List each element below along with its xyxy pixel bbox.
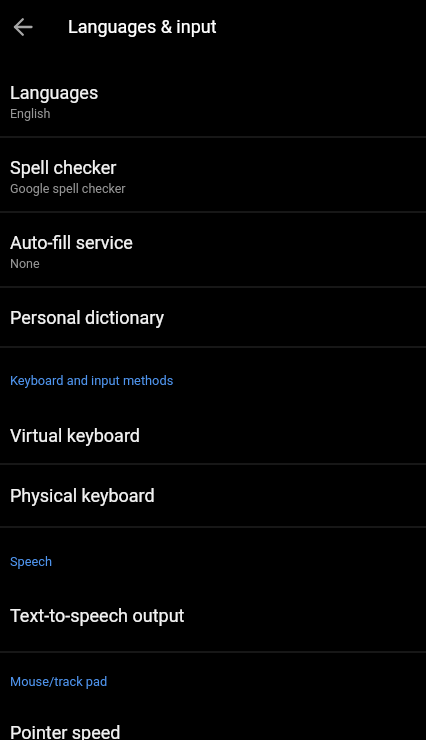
staticText: Google spell checker bbox=[10, 181, 126, 196]
staticText: Languages bbox=[10, 82, 99, 103]
staticText: Mouse/track pad bbox=[10, 674, 108, 689]
staticText: Auto-fill service bbox=[10, 232, 133, 253]
staticText: English bbox=[10, 106, 51, 121]
button[interactable] bbox=[0, 0, 48, 57]
staticText: None bbox=[10, 256, 40, 271]
staticText: Spell checker bbox=[10, 157, 117, 178]
button[interactable]: Auto-fill service bbox=[0, 213, 426, 288]
staticText: Personal dictionary bbox=[10, 307, 165, 328]
staticText: Virtual keyboard bbox=[10, 425, 140, 446]
button[interactable]: Virtual keyboard bbox=[0, 407, 426, 465]
staticText: Speech bbox=[10, 554, 53, 569]
staticText: Keyboard and input methods bbox=[10, 373, 174, 388]
button[interactable]: Text-to-speech output bbox=[0, 587, 426, 653]
button[interactable]: Languages bbox=[0, 63, 426, 138]
button[interactable]: Pointer speed bbox=[0, 712, 426, 740]
staticText: Text-to-speech output bbox=[10, 605, 185, 626]
staticText: Physical keyboard bbox=[10, 485, 155, 506]
staticText: Languages & input bbox=[68, 16, 217, 37]
button[interactable]: Physical keyboard bbox=[0, 465, 426, 528]
button[interactable]: Personal dictionary bbox=[0, 288, 426, 348]
staticText: Pointer speed bbox=[10, 722, 121, 740]
button[interactable]: Spell checker bbox=[0, 138, 426, 213]
